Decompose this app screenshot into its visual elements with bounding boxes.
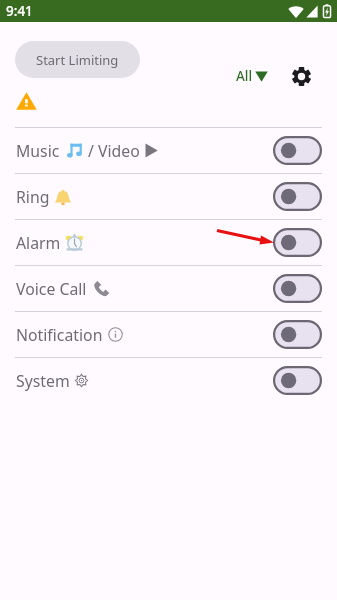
- staticText: Notification: [16, 324, 103, 346]
- button[interactable]: Toggle: [273, 136, 322, 165]
- button[interactable]: Toggle: [273, 320, 322, 349]
- button[interactable]: Notification: [0, 312, 337, 357]
- staticText: Ring: [16, 186, 50, 208]
- staticText: 9:41: [6, 2, 33, 20]
- button[interactable]: Alarm: [0, 220, 337, 265]
- button[interactable]: System: [0, 358, 337, 403]
- staticText: Alarm: [16, 232, 61, 254]
- staticText: Start Limiting: [36, 51, 119, 69]
- button[interactable]: Settings: [287, 62, 315, 90]
- staticText: Music: [16, 140, 60, 162]
- button[interactable]: Start Limiting: [15, 41, 140, 78]
- button[interactable]: Toggle: [273, 274, 322, 303]
- button[interactable]: All: [232, 63, 272, 89]
- button[interactable]: Toggle: [273, 366, 322, 395]
- staticText: System: [16, 370, 70, 392]
- button[interactable]: Music: [0, 128, 337, 173]
- staticText: / Video: [88, 140, 140, 162]
- button[interactable]: Toggle: [273, 228, 322, 257]
- button[interactable]: Toggle: [273, 182, 322, 211]
- button[interactable]: Ring: [0, 174, 337, 219]
- staticText: Voice Call: [16, 278, 87, 300]
- button[interactable]: Voice Call: [0, 266, 337, 311]
- staticText: All: [236, 67, 253, 85]
